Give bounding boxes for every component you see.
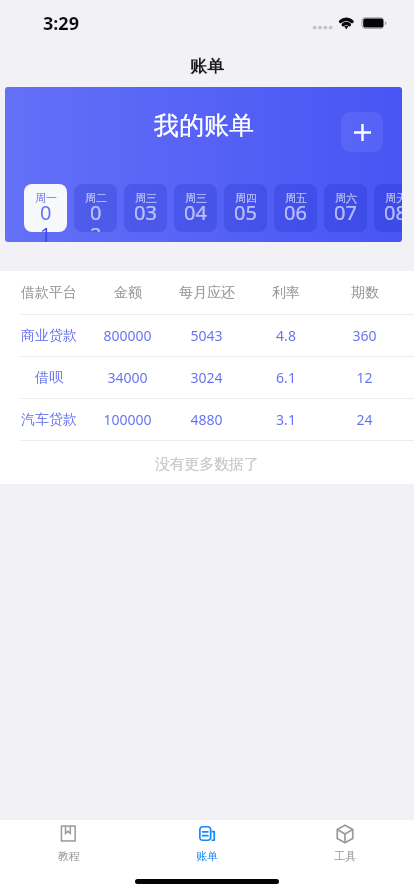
button[interactable]: 周四 [224,184,267,232]
staticText: 利率 [272,284,300,302]
button[interactable]: 周一 [24,184,67,232]
staticText: 期数 [351,284,379,302]
staticText: 周三 [185,191,207,205]
staticText: 5043 [190,326,223,345]
staticText: 工具 [334,849,356,863]
staticText: 05 [234,199,257,226]
staticText: 12 [356,368,373,387]
staticText: 100000 [103,410,152,429]
staticText: 账单 [196,849,218,863]
button[interactable]: 工具 [276,820,414,865]
button[interactable]: 添加账单 [341,112,383,152]
staticText: 每月应还 [179,284,235,302]
button[interactable]: 周三 [174,184,217,232]
staticText: 6.1 [276,368,296,387]
staticText: 没有更多数据了 [155,455,259,474]
staticText: 我的账单 [154,110,254,141]
staticText: 3024 [190,368,223,387]
button[interactable]: 周二 [74,184,117,232]
staticText: 周六 [335,191,357,205]
staticText: 360 [352,326,377,345]
staticText: 借款平台 [21,284,77,302]
button[interactable]: 教程 [0,820,138,865]
staticText: 06 [284,199,307,226]
button[interactable]: 周五 [274,184,317,232]
staticText: 1 [40,221,52,242]
staticText: 周天 [385,191,402,205]
staticText: 金额 [114,284,142,302]
staticText: 周五 [285,191,307,205]
staticText: 周三 [135,191,157,205]
staticText: 周二 [85,191,107,205]
staticText: 07 [334,199,357,226]
staticText: 24 [356,410,373,429]
staticText: 4880 [190,410,223,429]
button[interactable]: 周三 [124,184,167,232]
staticText: 0 [90,199,102,226]
staticText: 商业贷款 [21,327,77,345]
button[interactable]: 周天 [374,184,402,232]
staticText: 汽车贷款 [21,411,77,429]
staticText: 借呗 [35,369,63,387]
button[interactable]: 周六 [324,184,367,232]
staticText: 账单 [190,56,224,77]
staticText: 08 [384,199,402,226]
staticText: 周四 [235,191,257,205]
staticText: 4.8 [276,326,296,345]
staticText: 800000 [103,326,152,345]
staticText: 周一 [35,191,57,205]
staticText: 3:29 [43,11,79,36]
staticText: 04 [184,199,207,226]
staticText: 34000 [107,368,148,387]
button[interactable]: 账单 [138,820,276,865]
staticText: 0 [40,199,52,226]
staticText: 03 [134,199,157,226]
staticText: 教程 [58,849,80,863]
staticText: 2 [90,221,102,232]
staticText: 3.1 [276,410,296,429]
